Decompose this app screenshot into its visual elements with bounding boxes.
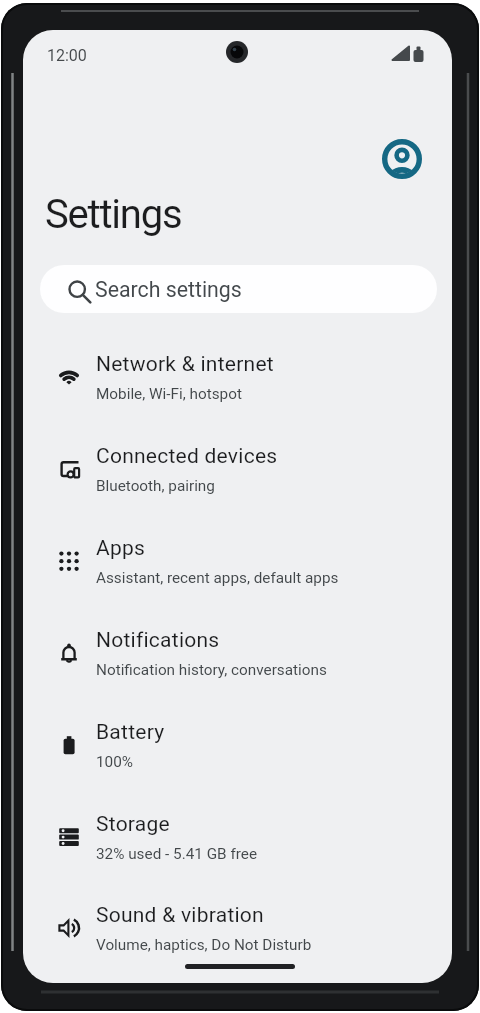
staticText: Storage [96,812,170,837]
button[interactable]: Sound & vibration [23,879,452,971]
staticText: Search settings [95,277,242,302]
button[interactable]: Connected devices [23,420,452,512]
button[interactable]: Notifications [23,604,452,696]
staticText: Battery [96,720,165,745]
button[interactable]: Apps [23,512,452,604]
button[interactable]: Network & internet [23,328,452,420]
staticText: Apps [96,536,146,561]
staticText: Notifications [96,628,220,653]
staticText: 100% [96,753,133,771]
staticText: Bluetooth, pairing [96,477,215,495]
staticText: 12:00 [47,46,87,65]
staticText: 32% used - 5.41 GB free [96,845,258,863]
button[interactable]: Search settings [40,265,437,313]
button[interactable]: Storage [23,788,452,880]
staticText: Network & internet [96,352,274,377]
staticText: Connected devices [96,444,278,469]
button[interactable]: Battery [23,696,452,788]
staticText: Mobile, Wi-Fi, hotspot [96,385,242,403]
staticText: Settings [45,191,182,238]
staticText: Assistant, recent apps, default apps [96,569,339,587]
button[interactable] [377,134,427,184]
staticText: Sound & vibration [96,903,264,928]
staticText: Volume, haptics, Do Not Disturb [96,936,312,954]
staticText: Notification history, conversations [96,661,327,679]
